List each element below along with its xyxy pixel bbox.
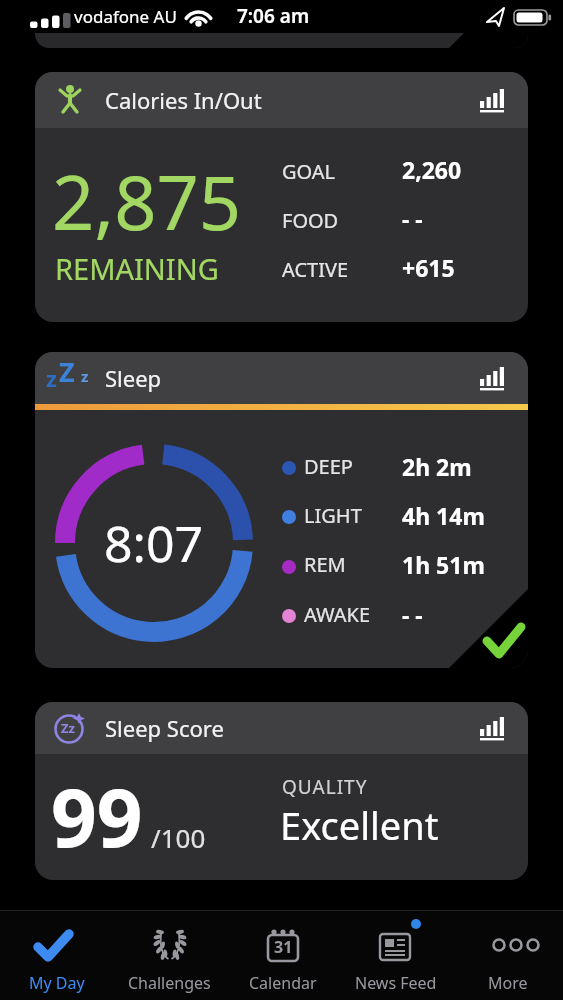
staticText: - - bbox=[402, 599, 423, 630]
staticText: News Feed bbox=[355, 972, 437, 994]
staticText: 2h 2m bbox=[402, 451, 472, 482]
staticText: Sleep Score bbox=[105, 713, 224, 743]
staticText: QUALITY bbox=[282, 774, 368, 800]
staticText: REM bbox=[304, 551, 346, 578]
button[interactable]: Zz bbox=[35, 702, 528, 880]
staticText: vodafone AU bbox=[74, 5, 177, 28]
staticText: 8:07 bbox=[104, 509, 204, 577]
staticText: 31 bbox=[274, 936, 293, 958]
button[interactable]: News Feed bbox=[339, 910, 452, 1000]
button[interactable]: More bbox=[452, 910, 563, 1000]
staticText: Excellent bbox=[280, 799, 439, 851]
staticText: My Day bbox=[29, 972, 85, 994]
button[interactable]: 31 bbox=[226, 910, 339, 1000]
staticText: /100 bbox=[151, 820, 206, 855]
staticText: LIGHT bbox=[304, 502, 362, 529]
button[interactable]: z bbox=[35, 352, 528, 668]
staticText: 4h 14m bbox=[402, 500, 485, 531]
staticText: z bbox=[46, 363, 57, 393]
staticText: Z bbox=[59, 353, 75, 383]
button[interactable]: My Day bbox=[0, 910, 113, 1000]
staticText: DEEP bbox=[304, 453, 353, 480]
staticText: Challenges bbox=[128, 972, 211, 994]
staticText: Zz bbox=[61, 719, 75, 737]
staticText: Calendar bbox=[249, 972, 317, 994]
staticText: 1h 51m bbox=[402, 549, 485, 580]
staticText: GOAL bbox=[282, 158, 336, 185]
staticText: +615 bbox=[402, 252, 455, 283]
staticText: - - bbox=[402, 203, 423, 234]
staticText: 2,260 bbox=[402, 154, 462, 185]
button[interactable]: Challenges bbox=[113, 910, 226, 1000]
staticText: Calories In/Out bbox=[105, 85, 262, 115]
staticText: 99 bbox=[51, 761, 143, 870]
staticText: ACTIVE bbox=[282, 256, 349, 283]
staticText: z bbox=[81, 366, 89, 386]
staticText: REMAINING bbox=[55, 249, 219, 288]
staticText: AWAKE bbox=[304, 601, 371, 628]
button[interactable]: Calories In/Out bbox=[35, 72, 528, 322]
staticText: FOOD bbox=[282, 207, 339, 234]
staticText: 7:06 am bbox=[237, 3, 310, 29]
staticText: More bbox=[488, 972, 528, 994]
staticText: Sleep bbox=[105, 363, 162, 393]
staticText: 2,875 bbox=[52, 151, 242, 252]
